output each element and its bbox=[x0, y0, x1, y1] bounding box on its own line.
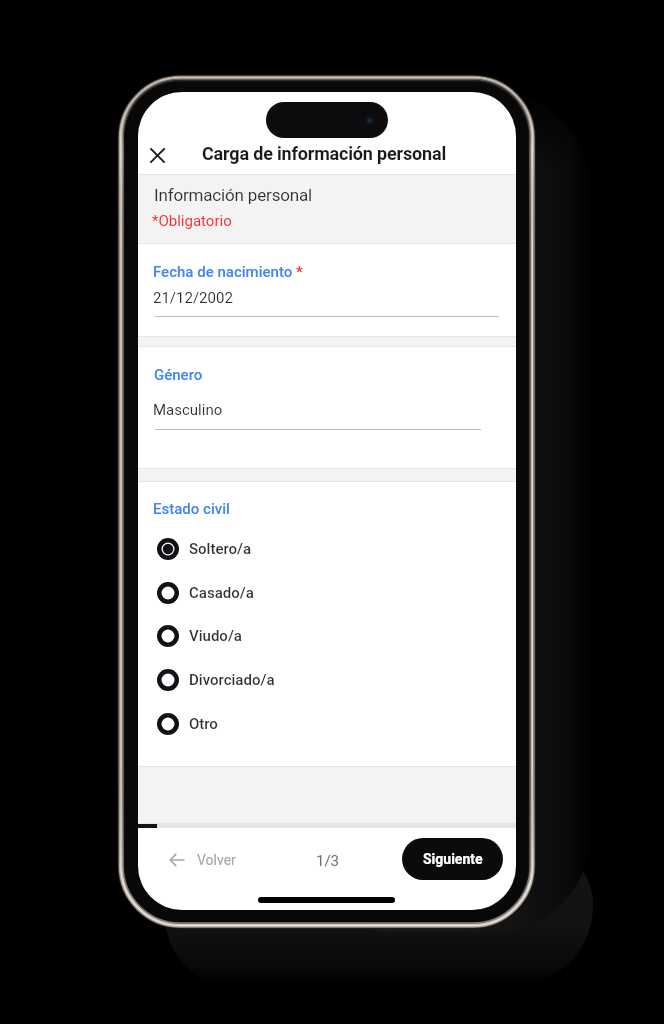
staticText: Divorciado/a bbox=[189, 671, 275, 689]
staticText: Viudo/a bbox=[189, 627, 242, 645]
staticText: Carga de información personal bbox=[202, 143, 446, 164]
staticText: Género bbox=[154, 366, 203, 384]
button[interactable]: Cerrar bbox=[143, 141, 171, 169]
staticText: Fecha de nacimiento bbox=[153, 263, 296, 281]
button[interactable]: Género bbox=[153, 358, 483, 433]
staticText: Masculino bbox=[153, 401, 223, 419]
button[interactable]: Fecha de nacimiento bbox=[153, 255, 501, 320]
button[interactable]: Divorciado/a bbox=[138, 658, 516, 701]
staticText: 1/3 bbox=[316, 852, 340, 870]
staticText: Estado civil bbox=[153, 500, 230, 518]
staticText: * bbox=[296, 263, 303, 281]
button[interactable]: Viudo/a bbox=[138, 614, 516, 657]
staticText: Soltero/a bbox=[189, 540, 252, 558]
staticText: Otro bbox=[189, 715, 218, 733]
button[interactable]: Volver bbox=[169, 838, 236, 882]
button[interactable]: Casado/a bbox=[138, 571, 516, 614]
staticText: 21/12/2002 bbox=[153, 289, 233, 307]
button[interactable]: Siguiente bbox=[402, 838, 503, 880]
staticText: Siguiente bbox=[423, 851, 483, 867]
button[interactable]: Soltero/a bbox=[138, 527, 516, 570]
staticText: *Obligatorio bbox=[152, 212, 232, 230]
staticText: Casado/a bbox=[189, 584, 254, 602]
staticText: Volver bbox=[197, 852, 236, 868]
button[interactable]: Otro bbox=[138, 702, 516, 745]
staticText: Información personal bbox=[154, 185, 313, 205]
